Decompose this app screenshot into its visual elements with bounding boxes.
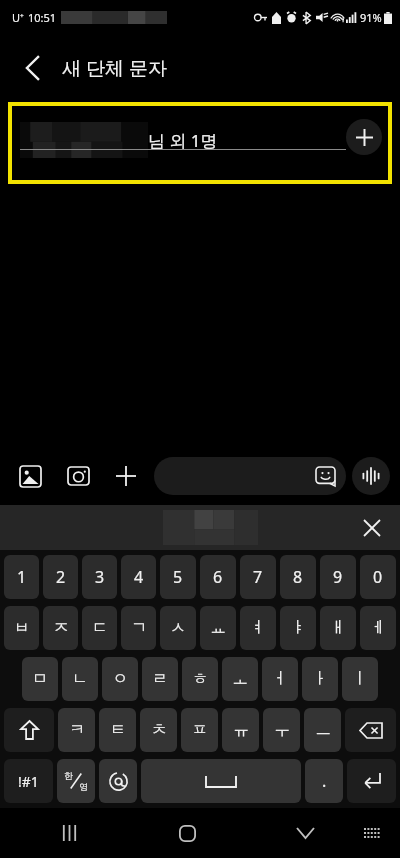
staticText: ㄴ: [72, 669, 88, 689]
button[interactable]: ㅇ: [102, 657, 138, 701]
button[interactable]: 2: [43, 555, 78, 599]
staticText: ㅎ: [192, 669, 208, 689]
staticText: 8: [293, 566, 303, 588]
staticText: 7: [253, 566, 263, 588]
button[interactable]: Recents: [47, 811, 91, 855]
staticText: 6: [213, 566, 223, 588]
staticText: ㄹ: [152, 669, 168, 689]
button[interactable]: ㅜ: [263, 708, 300, 752]
button[interactable]: 8: [280, 555, 316, 599]
button[interactable]: ㄴ: [62, 657, 98, 701]
staticText: ㅐ: [330, 618, 346, 638]
staticText: 한: [64, 770, 73, 781]
button[interactable]: Message input: [154, 457, 346, 495]
button[interactable]: ㅂ: [4, 606, 39, 650]
staticText: ㅜ: [274, 720, 290, 740]
button[interactable]: 3: [82, 555, 117, 599]
button[interactable]: ㅁ: [22, 657, 58, 701]
button[interactable]: ㅏ: [302, 657, 338, 701]
button[interactable]: ㅓ: [262, 657, 298, 701]
staticText: 10:51: [28, 10, 57, 25]
staticText: ㅍ: [192, 720, 208, 740]
button[interactable]: Add recipient: [346, 119, 382, 155]
button[interactable]: Switch keyboard: [352, 813, 392, 853]
button[interactable]: ㄷ: [82, 606, 117, 650]
button[interactable]: Space: [141, 759, 301, 803]
staticText: ㅓ: [272, 669, 288, 689]
staticText: ㅕ: [250, 618, 266, 638]
button[interactable]: ㅊ: [140, 708, 177, 752]
button[interactable]: Back: [14, 49, 52, 87]
button[interactable]: ㅗ: [222, 657, 258, 701]
button[interactable]: ㅣ: [342, 657, 378, 701]
button[interactable]: Backspace: [345, 708, 396, 752]
staticText: ㅔ: [370, 618, 386, 638]
button[interactable]: Gallery: [10, 456, 50, 496]
staticText: 0: [373, 566, 383, 588]
button[interactable]: 1: [4, 555, 39, 599]
staticText: 91%: [360, 10, 382, 25]
staticText: ㅏ: [312, 669, 328, 689]
button[interactable]: More options: [106, 456, 146, 496]
staticText: 1: [17, 566, 27, 588]
button[interactable]: Korean English toggle: [57, 759, 95, 803]
staticText: ㅛ: [210, 618, 226, 638]
button[interactable]: 7: [240, 555, 276, 599]
button[interactable]: Shift: [4, 708, 54, 752]
staticText: 2: [56, 566, 66, 588]
staticText: ㅣ: [352, 669, 368, 689]
button[interactable]: ㄱ: [121, 606, 156, 650]
button[interactable]: ㅋ: [58, 708, 95, 752]
button[interactable]: ㄹ: [142, 657, 178, 701]
staticText: ㄱ: [131, 618, 147, 638]
button[interactable]: ㅍ: [181, 708, 218, 752]
staticText: ㅇ: [112, 669, 128, 689]
button[interactable]: Camera: [58, 456, 98, 496]
staticText: ㅂ: [14, 618, 30, 638]
button[interactable]: ㅎ: [182, 657, 218, 701]
button[interactable]: ㅅ: [160, 606, 196, 650]
button[interactable]: !#1: [4, 759, 53, 803]
button[interactable]: 9: [320, 555, 356, 599]
button[interactable]: ㅈ: [43, 606, 78, 650]
button[interactable]: ㅕ: [240, 606, 276, 650]
staticText: 9: [333, 566, 343, 588]
button[interactable]: At sign: [99, 759, 137, 803]
staticText: ㅅ: [170, 618, 186, 638]
button[interactable]: 0: [360, 555, 396, 599]
button[interactable]: ㅌ: [99, 708, 136, 752]
staticText: 3: [95, 566, 105, 588]
button[interactable]: Enter: [347, 759, 396, 803]
button[interactable]: ㅠ: [222, 708, 259, 752]
button[interactable]: 6: [200, 555, 236, 599]
button[interactable]: Hide keyboard: [283, 811, 327, 855]
staticText: ㅈ: [53, 618, 69, 638]
staticText: .: [322, 770, 327, 792]
staticText: ㅊ: [151, 720, 167, 740]
button[interactable]: ㅛ: [200, 606, 236, 650]
staticText: ㅌ: [110, 720, 126, 740]
button[interactable]: Voice message: [352, 457, 390, 495]
staticText: ㅁ: [32, 669, 48, 689]
button[interactable]: Home: [165, 811, 209, 855]
button[interactable]: ㅡ: [304, 708, 341, 752]
button[interactable]: ㅑ: [280, 606, 316, 650]
button[interactable]: ㅐ: [320, 606, 356, 650]
button[interactable]: ㅔ: [360, 606, 396, 650]
staticText: ㅋ: [69, 720, 85, 740]
staticText: U⁺: [12, 10, 24, 25]
staticText: 영: [79, 781, 88, 792]
button[interactable]: .: [305, 759, 343, 803]
staticText: 4: [134, 566, 144, 588]
staticText: !#1: [18, 772, 39, 791]
staticText: 님 외 1명: [148, 129, 218, 152]
button[interactable]: Close: [354, 510, 390, 546]
staticText: ㅠ: [233, 720, 249, 740]
staticText: ㅗ: [232, 669, 248, 689]
staticText: 새 단체 문자: [62, 55, 167, 81]
staticText: ㅡ: [315, 720, 331, 740]
staticText: ㄷ: [92, 618, 108, 638]
button[interactable]: 4: [121, 555, 156, 599]
button[interactable]: 5: [160, 555, 196, 599]
staticText: ㅑ: [290, 618, 306, 638]
